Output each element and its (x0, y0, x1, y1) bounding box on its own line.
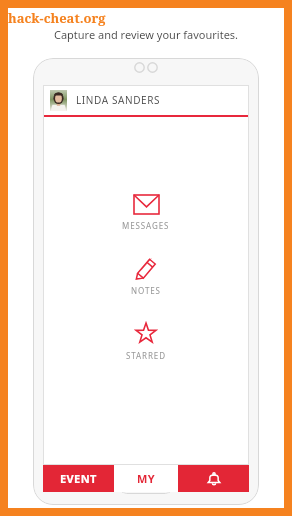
staticText: Capture and review your favourites. (0, 27, 292, 42)
button[interactable]: LINDA SANDERS (43, 85, 249, 115)
button[interactable]: Notifications (178, 465, 249, 492)
staticText: NOTES (131, 285, 161, 296)
button[interactable]: STARRED (108, 320, 184, 363)
staticText: MESSAGES (122, 220, 170, 231)
staticText: LINDA SANDERS (76, 93, 161, 107)
staticText: EVENT (60, 471, 97, 486)
button[interactable]: MY (114, 465, 178, 492)
button[interactable]: EVENT (43, 465, 114, 492)
button[interactable]: NOTES (113, 255, 179, 298)
button[interactable]: Home (118, 477, 174, 494)
button[interactable]: MESSAGES (104, 193, 188, 233)
staticText: MY (137, 471, 156, 486)
staticText: hack-cheat.org (8, 9, 106, 27)
staticText: STARRED (126, 350, 166, 361)
